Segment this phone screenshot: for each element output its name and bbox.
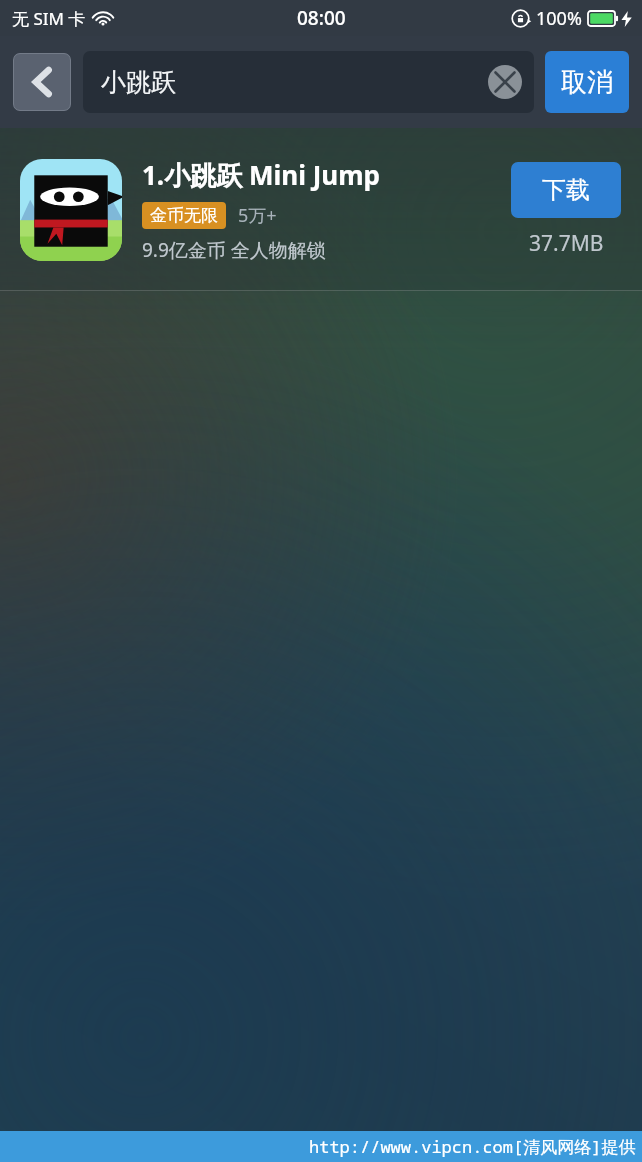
staticText: 9.9亿金币 全人物解锁 <box>142 237 326 263</box>
staticText: 取消 <box>561 66 613 99</box>
staticText: 08:00 <box>297 5 346 31</box>
button[interactable]: 清除 <box>488 65 522 99</box>
staticText: 无 SIM 卡 <box>12 7 86 30</box>
button[interactable]: 取消 <box>545 51 629 113</box>
staticText: 1.小跳跃 Mini Jump <box>142 157 380 193</box>
staticText: 5万+ <box>238 203 277 228</box>
button[interactable]: 返回 <box>13 53 71 111</box>
staticText: 100% <box>536 6 582 31</box>
staticText: 小跳跃 <box>101 67 176 98</box>
button[interactable]: 1.小跳跃 Mini Jump <box>0 128 642 291</box>
staticText: http://www.vipcn.com[清风网络]提供 <box>309 1135 636 1158</box>
staticText: 下载 <box>542 175 590 205</box>
staticText: 金币无限 <box>150 205 218 226</box>
staticText: 37.7MB <box>529 229 604 258</box>
button[interactable]: 小跳跃 <box>83 51 534 113</box>
button[interactable]: 下载 <box>511 162 621 218</box>
